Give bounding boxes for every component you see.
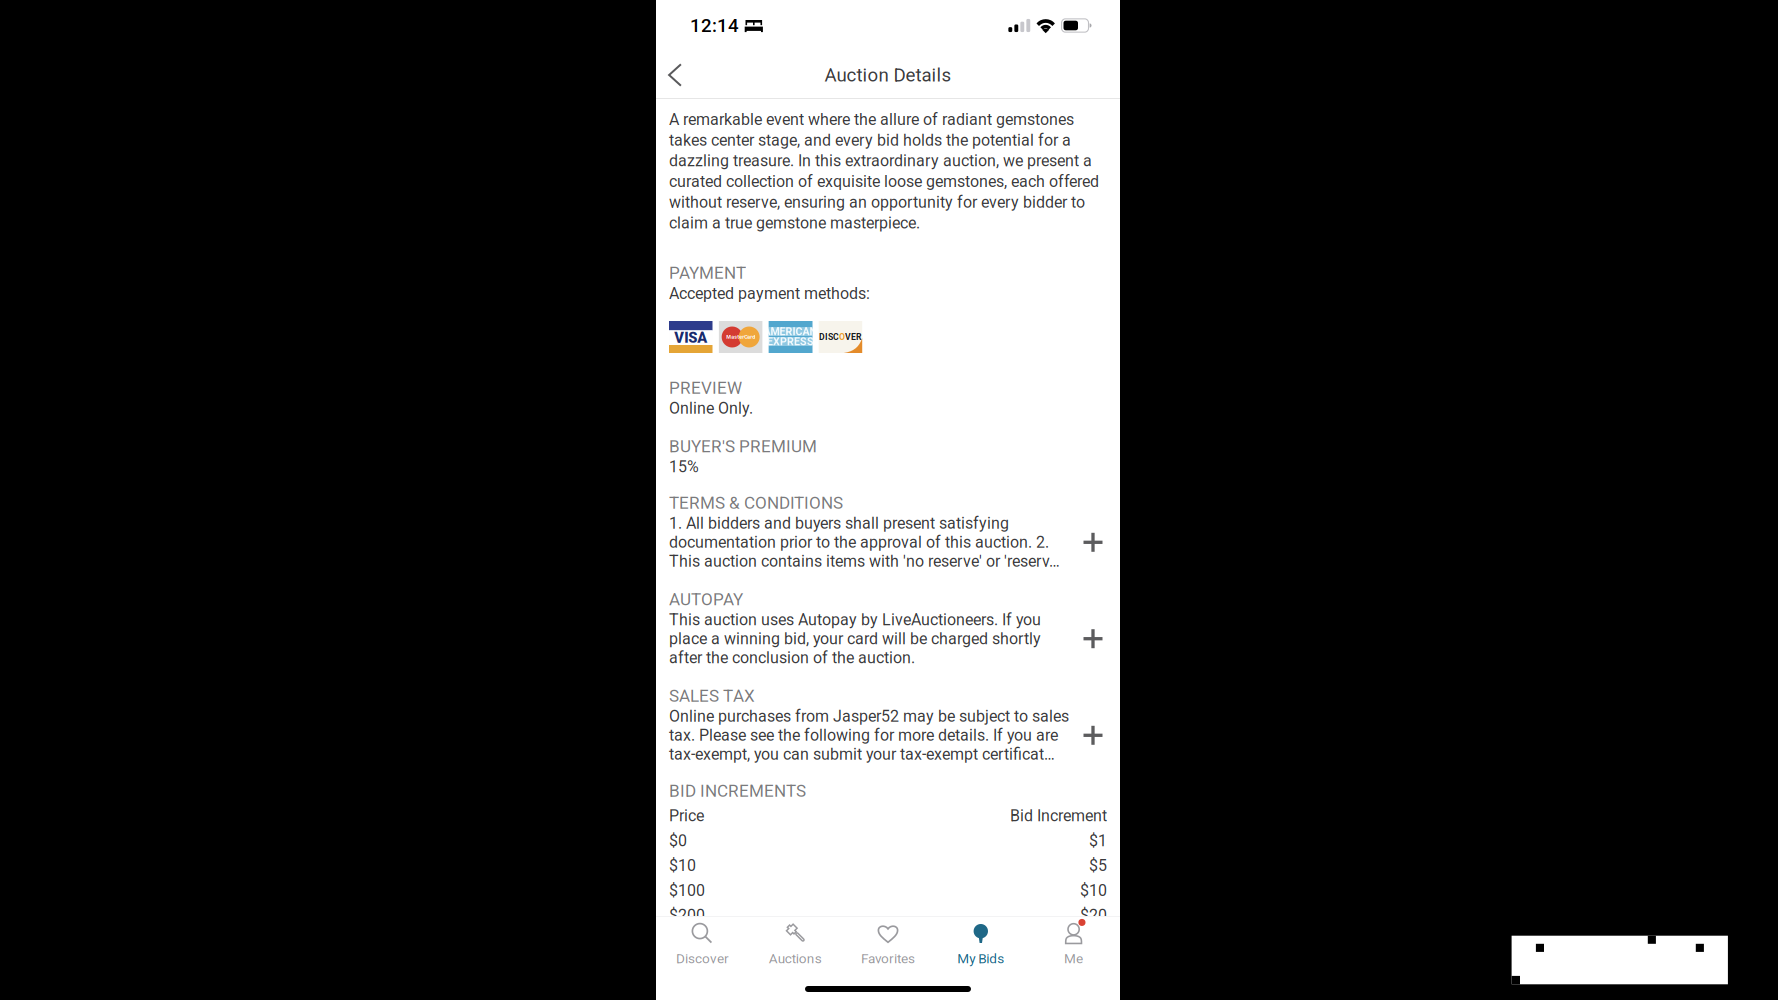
staticText: after the conclusion of the auction. bbox=[669, 648, 915, 667]
staticText: dazzling treasure. In this extraordinary… bbox=[669, 151, 1092, 170]
staticText: This auction contains items with 'no res… bbox=[669, 552, 1060, 571]
staticText: 12:14 bbox=[690, 15, 739, 36]
staticText: tax-exempt, you can submit your tax-exem… bbox=[669, 745, 1055, 764]
staticText: SALES TAX bbox=[669, 686, 755, 706]
staticText: BID INCREMENTS bbox=[669, 781, 806, 801]
staticText: MasterCard bbox=[726, 334, 755, 340]
button[interactable]: My Bids bbox=[934, 915, 1027, 971]
staticText: A remarkable event where the allure of r… bbox=[669, 110, 1074, 129]
button[interactable]: Discover bbox=[656, 915, 749, 971]
staticText: $100 bbox=[669, 881, 705, 900]
staticText: BUYER'S PREMIUM bbox=[669, 436, 817, 456]
button[interactable]: Me bbox=[1027, 915, 1120, 971]
staticText: VER bbox=[845, 332, 862, 342]
staticText: $10 bbox=[1080, 881, 1107, 900]
staticText: AUTOPAY bbox=[669, 589, 743, 609]
button[interactable]: Back bbox=[653, 53, 697, 97]
staticText: Me bbox=[1064, 951, 1083, 966]
staticText: Online Only. bbox=[669, 399, 753, 418]
staticText: $20 bbox=[1080, 906, 1107, 925]
staticText: place a winning bid, your card will be c… bbox=[669, 629, 1041, 648]
staticText: This auction uses Autopay by LiveAuction… bbox=[669, 610, 1041, 629]
staticText: $1 bbox=[1089, 831, 1107, 850]
staticText: PAYMENT bbox=[669, 263, 746, 283]
staticText: Bid Increment bbox=[1010, 806, 1107, 825]
button[interactable]: Expand SALES TAX bbox=[1079, 715, 1107, 755]
button[interactable]: Auctions bbox=[749, 915, 842, 971]
staticText: Favorites bbox=[861, 951, 915, 966]
staticText: takes center stage, and every bid holds … bbox=[669, 131, 1071, 150]
staticText: $10 bbox=[669, 856, 696, 875]
staticText: Online purchases from Jasper52 may be su… bbox=[669, 707, 1069, 726]
button[interactable]: Expand TERMS & CONDITIONS bbox=[1079, 522, 1107, 562]
staticText: tax. Please see the following for more d… bbox=[669, 726, 1058, 745]
staticText: $200 bbox=[669, 906, 705, 925]
staticText: Auction Details bbox=[824, 64, 951, 86]
staticText: TERMS & CONDITIONS bbox=[669, 493, 843, 513]
staticText: VISA bbox=[674, 329, 707, 346]
staticText: Auctions bbox=[769, 951, 822, 966]
button[interactable]: Expand AUTOPAY bbox=[1079, 619, 1107, 659]
staticText: Accepted payment methods: bbox=[669, 284, 870, 303]
staticText: Price bbox=[669, 806, 704, 825]
staticText: $0 bbox=[669, 831, 687, 850]
staticText: EXPRESS bbox=[767, 335, 814, 348]
staticText: PREVIEW bbox=[669, 378, 742, 398]
staticText: 1. All bidders and buyers shall present … bbox=[669, 514, 1009, 533]
staticText: without reserve, ensuring an opportunity… bbox=[669, 193, 1085, 212]
staticText: My Bids bbox=[957, 951, 1004, 966]
button[interactable]: Favorites bbox=[842, 915, 934, 971]
staticText: O bbox=[839, 332, 845, 342]
staticText: AMERICAN bbox=[763, 325, 817, 338]
staticText: claim a true gemstone masterpiece. bbox=[669, 214, 920, 232]
staticText: curated collection of exquisite loose ge… bbox=[669, 172, 1099, 191]
staticText: 15% bbox=[669, 457, 699, 476]
staticText: Discover bbox=[676, 951, 729, 966]
staticText: DISC bbox=[819, 332, 839, 342]
staticText: documentation prior to the approval of t… bbox=[669, 533, 1049, 552]
staticText: $5 bbox=[1089, 856, 1107, 875]
